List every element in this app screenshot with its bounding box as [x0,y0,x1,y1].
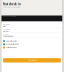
staticText: Breakfast included [6,43,19,45]
staticText: Last name [3,29,10,30]
staticText: Alex [3,25,6,27]
staticText: First name [3,24,10,25]
button[interactable]: Breakfast included [1,43,62,46]
staticText: Morgan [3,30,9,32]
button[interactable]: Late checkout [1,46,62,49]
staticText: Room 1204 · 2 nights [3,15,16,17]
staticText: Late checkout [6,47,16,48]
staticText: Today, 3:00 PM [3,35,13,37]
button[interactable]: Check in now [3,58,61,62]
button[interactable]: Airport transfer [1,39,62,43]
staticText: Airport transfer [6,40,17,42]
staticText: Arrival [3,33,8,35]
staticText: Fast check in [3,2,21,6]
staticText: Confirm your stay details [3,6,20,8]
staticText: Check in now [27,59,36,61]
